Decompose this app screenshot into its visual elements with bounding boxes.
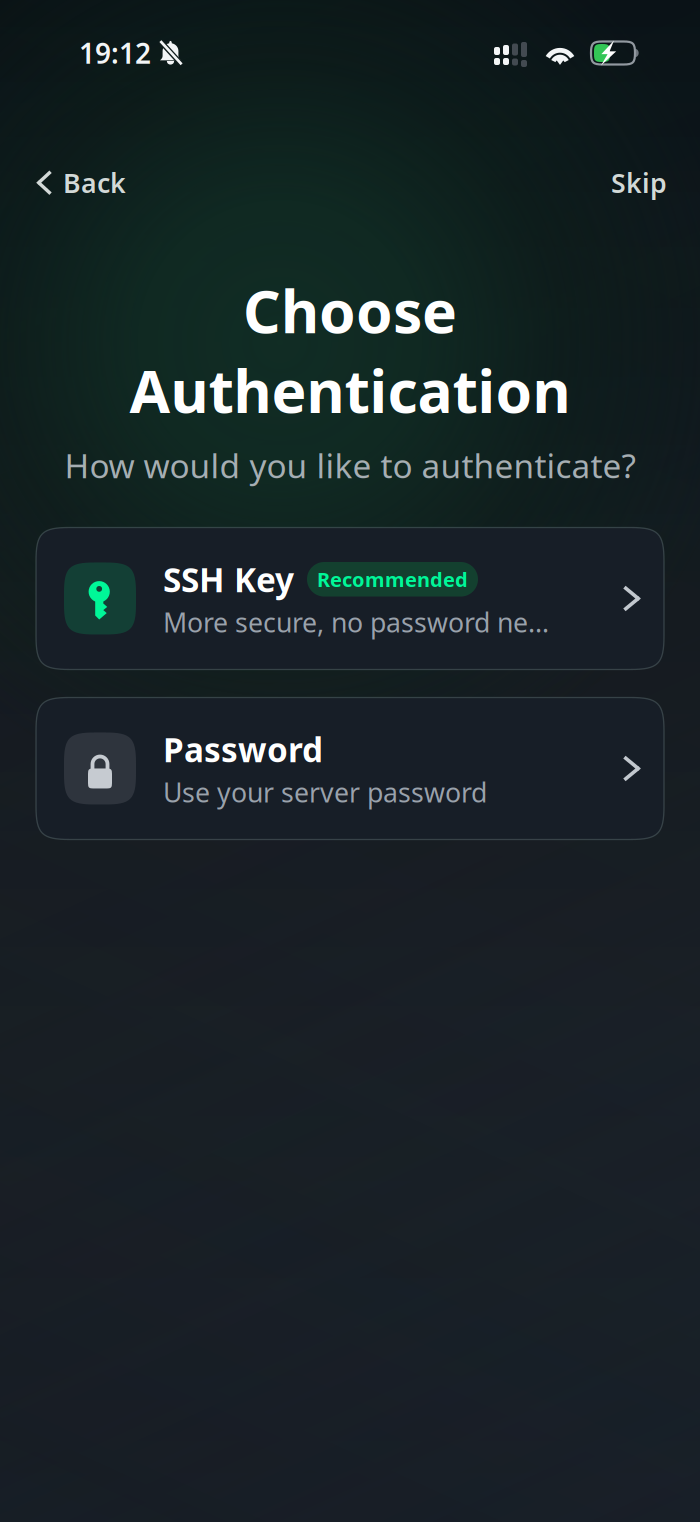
staticText: How would you like to authenticate? — [64, 443, 635, 487]
staticText: More secure, no password needed — [163, 604, 553, 640]
button[interactable]: Password — [36, 697, 664, 839]
staticText: Choose — [243, 271, 457, 349]
button[interactable]: Back — [29, 151, 134, 214]
staticText: Back — [63, 165, 126, 200]
button[interactable]: Skip — [603, 151, 675, 214]
staticText: Password — [163, 727, 323, 771]
staticText: Skip — [611, 165, 667, 200]
staticText: 19:12 — [79, 34, 151, 72]
staticText: Use your server password — [163, 774, 487, 810]
staticText: Recommended — [317, 566, 468, 593]
button[interactable]: SSH Key — [36, 527, 664, 669]
staticText: SSH Key — [163, 557, 294, 601]
staticText: Authentication — [129, 351, 570, 429]
